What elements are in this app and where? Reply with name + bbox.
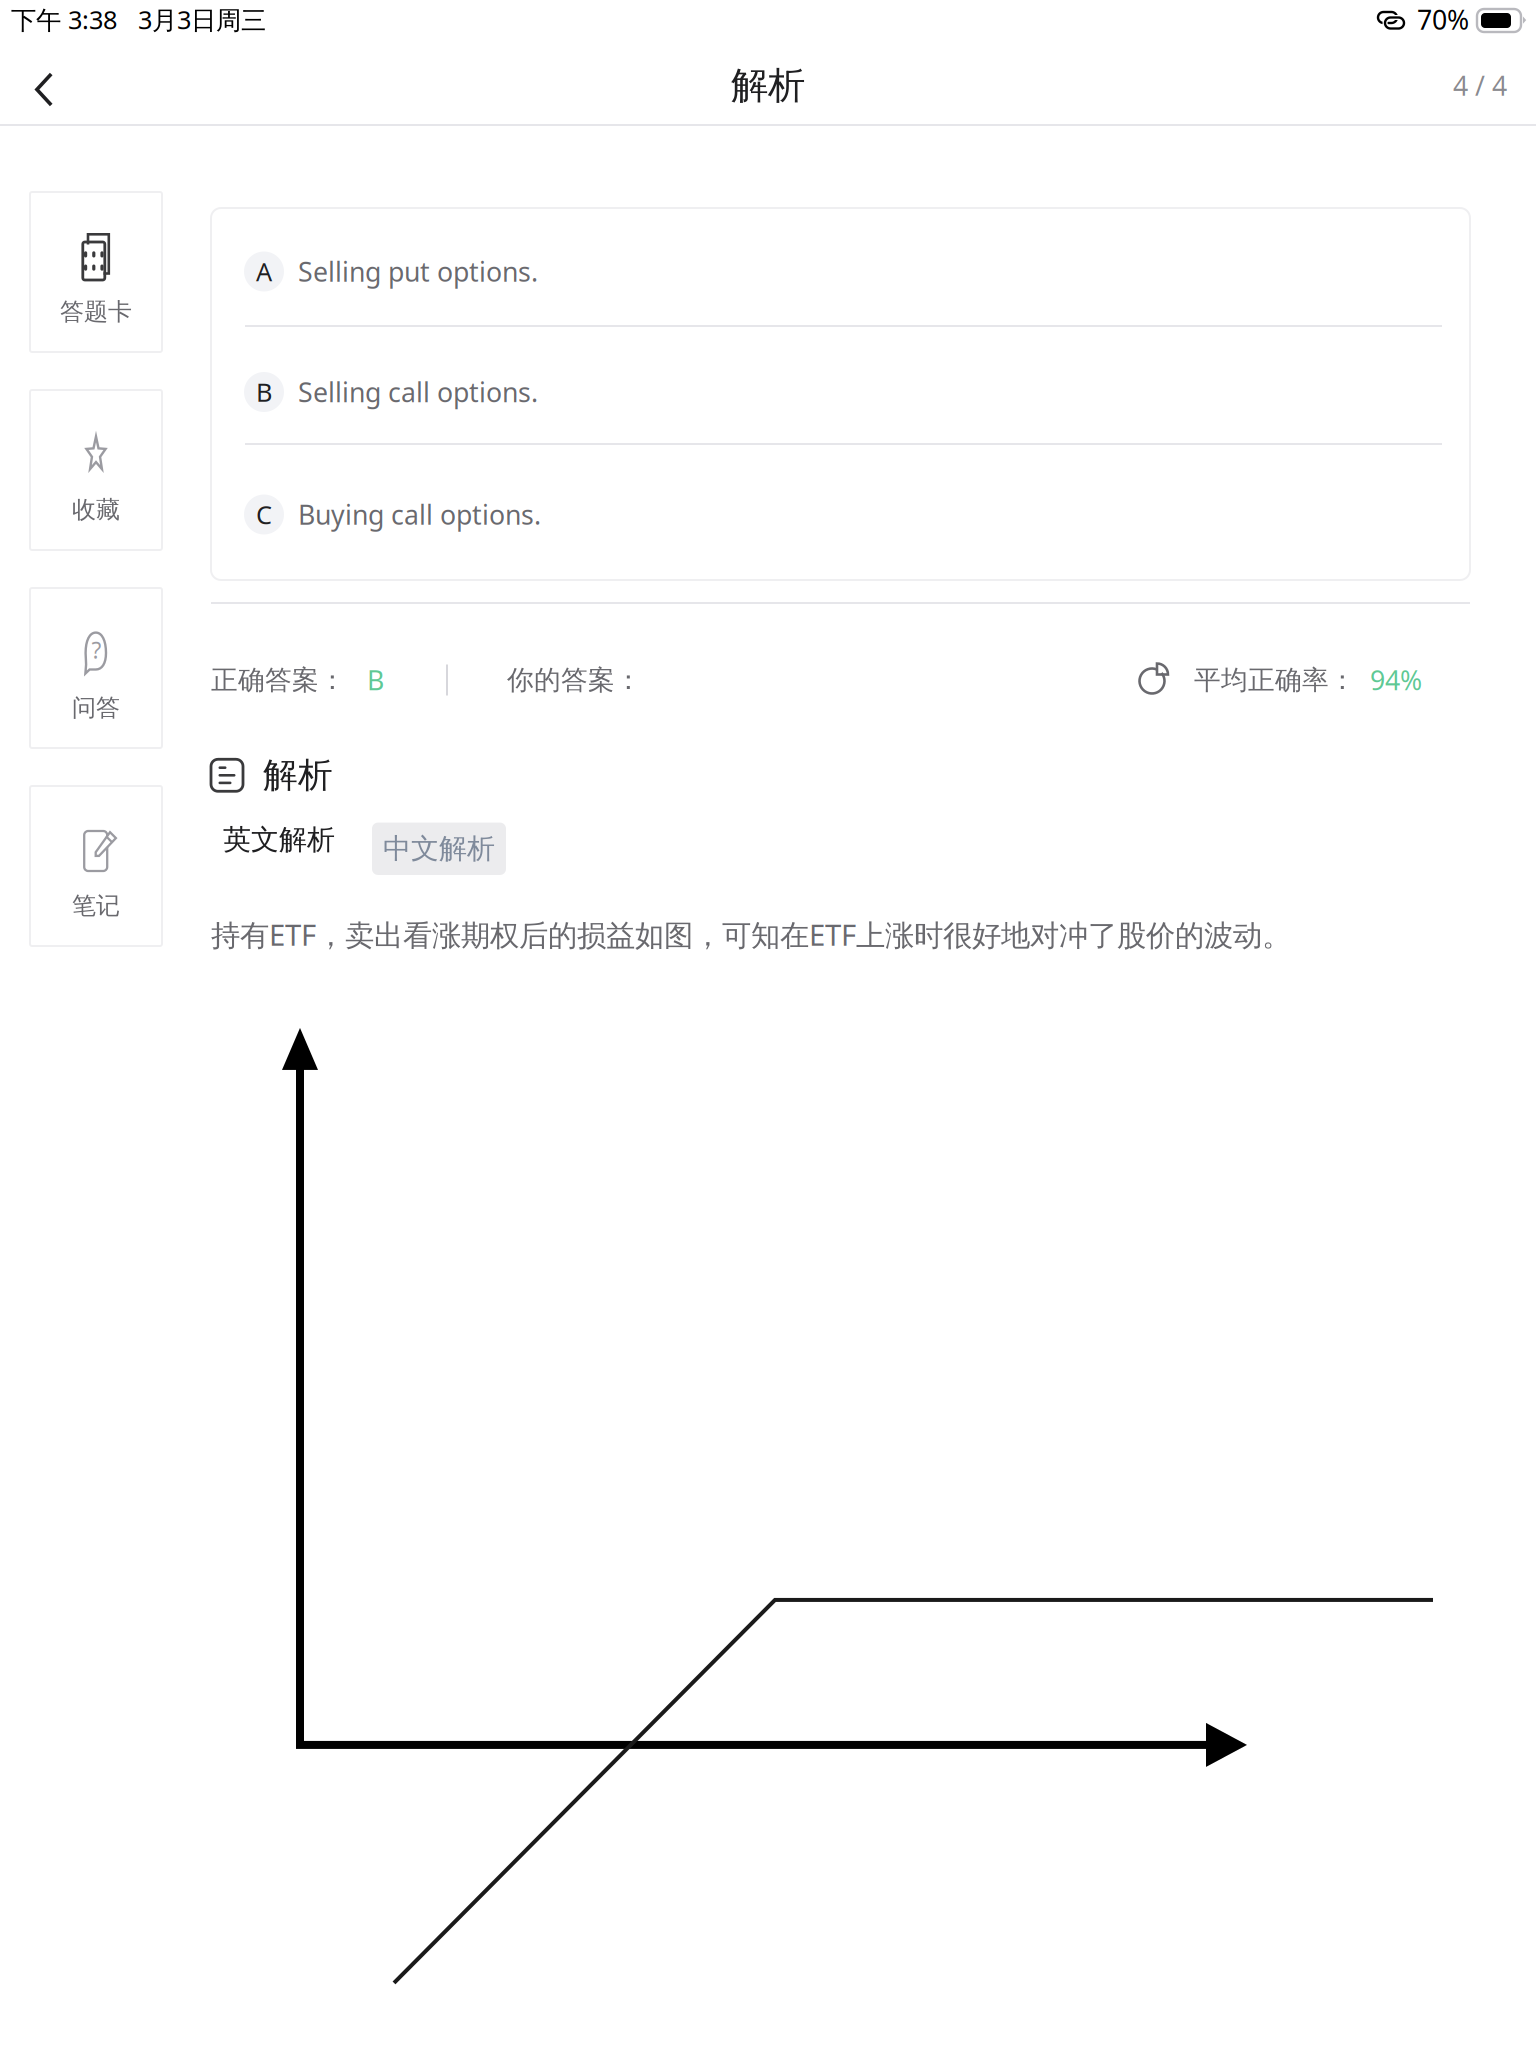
staticText: 中文解析 [383, 832, 495, 866]
staticText: C [256, 498, 272, 531]
staticText: 94% [1370, 662, 1422, 698]
staticText: 英文解析 [223, 823, 335, 857]
button[interactable]: C [211, 445, 1470, 580]
staticText: 正确答案： [211, 664, 346, 696]
staticText: 你的答案： [507, 664, 642, 696]
button[interactable]: A [211, 208, 1470, 325]
button[interactable]: 笔记 [30, 786, 162, 946]
button[interactable]: 中文解析 [376, 814, 510, 866]
staticText: 下午 3:38 3月3日周三 [11, 3, 266, 36]
staticText: 解析 [263, 754, 333, 797]
staticText: 答题卡 [60, 297, 132, 326]
staticText: B [256, 375, 272, 409]
button[interactable]: B [211, 327, 1470, 443]
button[interactable]: 英文解析 [211, 811, 347, 869]
staticText: 4 / 4 [1453, 68, 1507, 103]
staticText: 解析 [731, 63, 805, 108]
staticText: B [367, 662, 384, 698]
staticText: 平均正确率： [1194, 664, 1356, 696]
button[interactable]: Back [0, 46, 83, 125]
button[interactable]: 收藏 [30, 390, 162, 550]
staticText: ? [91, 635, 101, 665]
button[interactable]: ? [30, 588, 162, 748]
staticText: 70% [1417, 2, 1469, 37]
staticText: 笔记 [72, 891, 120, 920]
staticText: Selling put options. [298, 254, 538, 289]
staticText: Buying call options. [298, 497, 541, 532]
staticText: Selling call options. [298, 374, 538, 410]
staticText: 问答 [72, 693, 120, 722]
staticText: 收藏 [72, 495, 120, 524]
staticText: 持有ETF，卖出看涨期权后的损益如图，可知在ETF上涨时很好地对冲了股价的波动。 [211, 915, 1291, 954]
button[interactable]: 答题卡 [30, 192, 162, 352]
staticText: A [256, 255, 272, 288]
